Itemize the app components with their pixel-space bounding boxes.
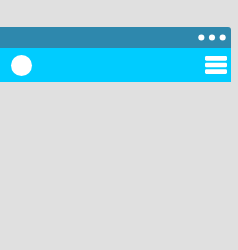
button[interactable]: Menu bbox=[205, 56, 227, 74]
button[interactable]: Window controls bbox=[196, 27, 228, 48]
button[interactable]: Profile bbox=[11, 55, 32, 76]
